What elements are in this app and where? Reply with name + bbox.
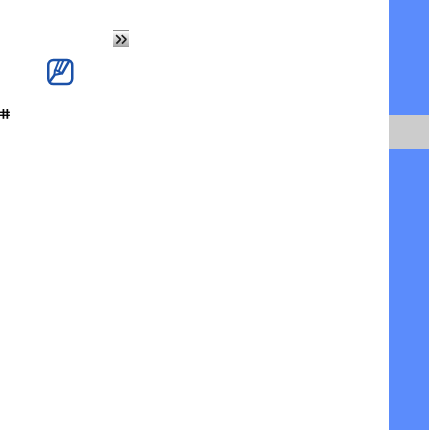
button[interactable]: Fast forward [113,30,129,47]
button[interactable]: Compose note [47,58,74,85]
button[interactable]: Hash [0,108,11,120]
